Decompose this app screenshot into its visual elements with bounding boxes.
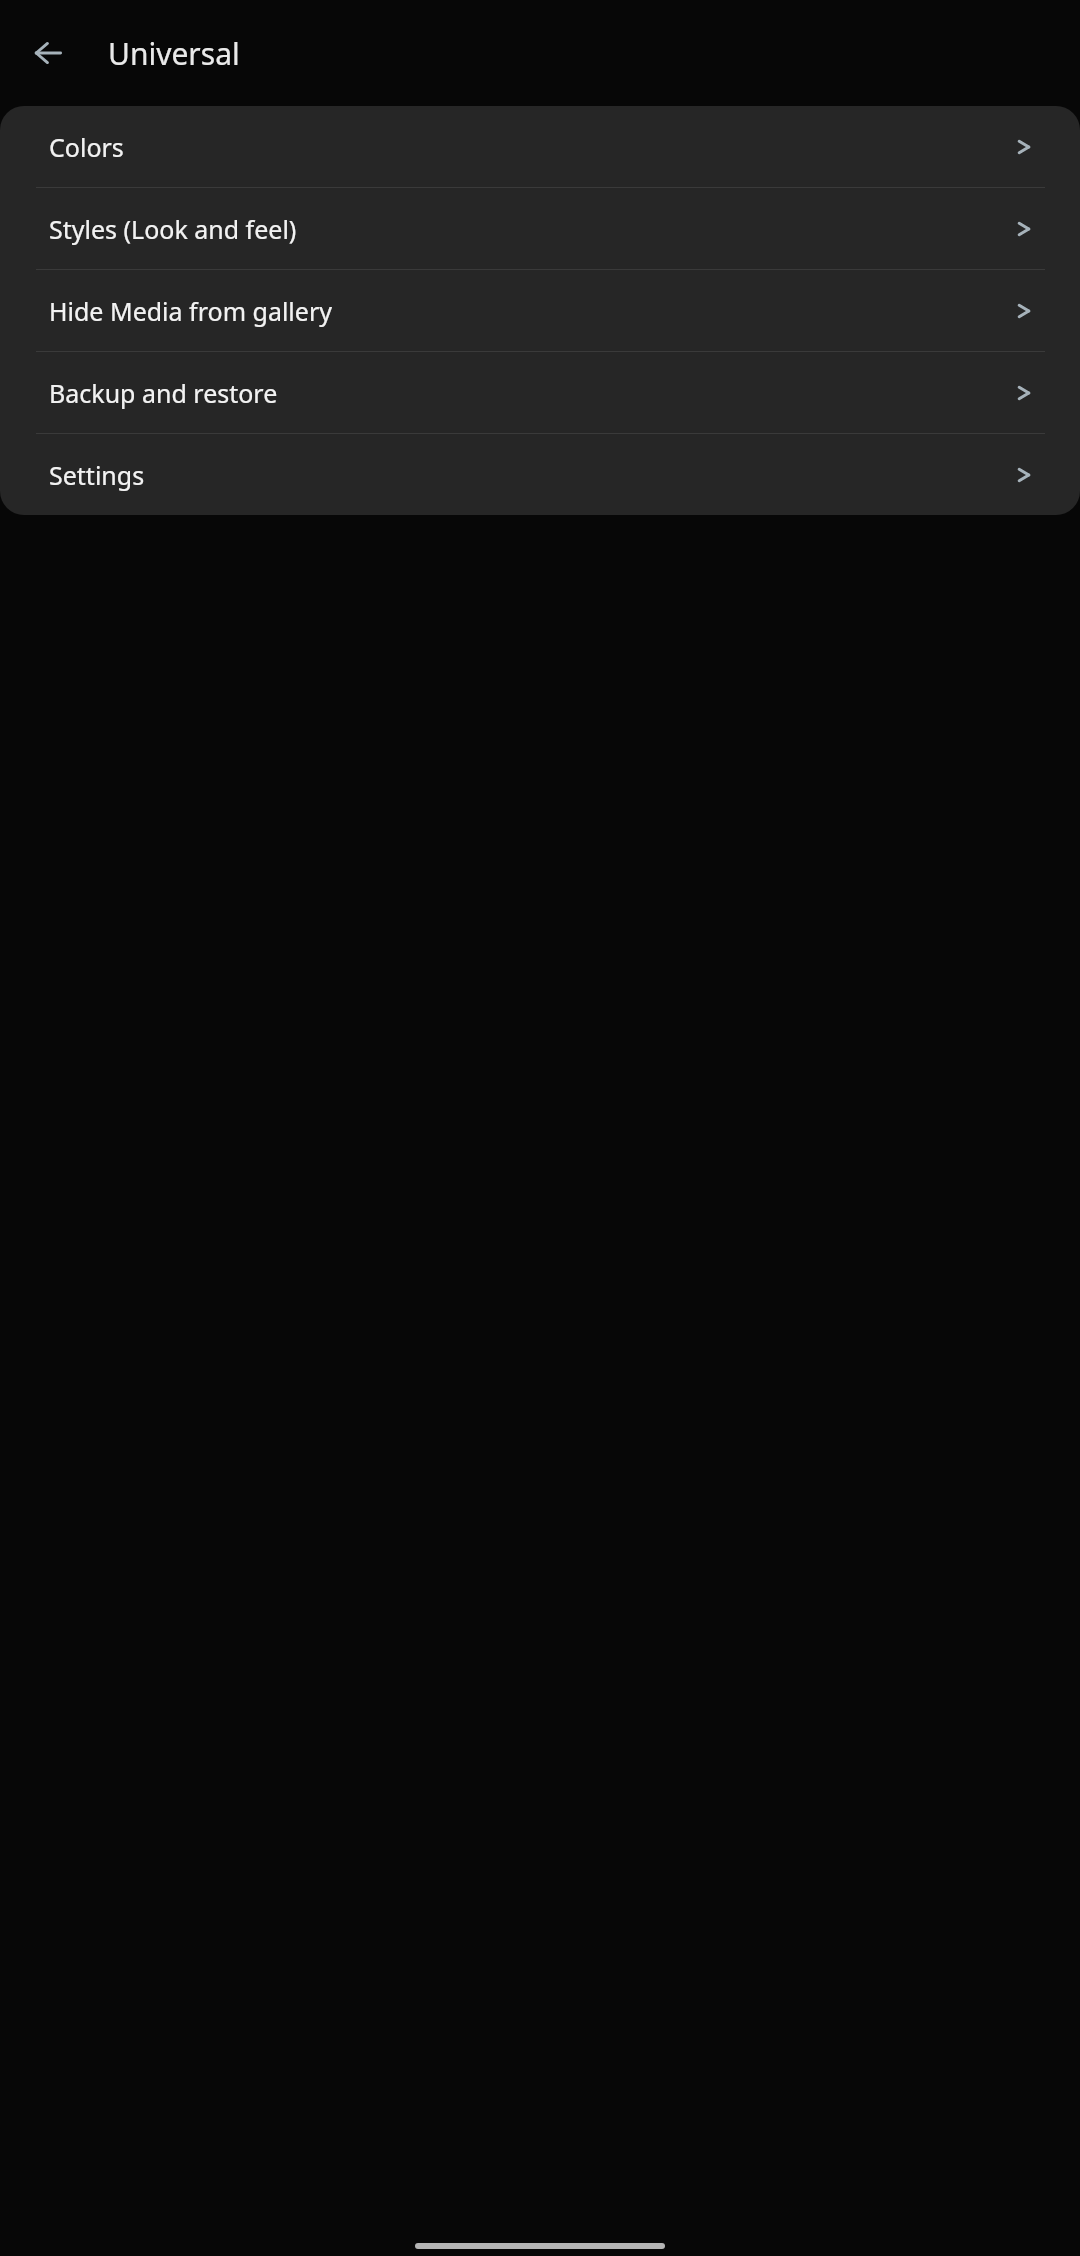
staticText: Hide Media from gallery — [49, 294, 332, 328]
staticText: Backup and restore — [49, 376, 278, 410]
other: Styles (Look and feel) — [1012, 217, 1036, 241]
staticText: Settings — [49, 458, 145, 492]
button[interactable]: Backup and restore — [0, 352, 1080, 433]
button[interactable]: Colors — [0, 106, 1080, 187]
button[interactable]: Hide Media from gallery — [0, 270, 1080, 351]
button[interactable]: Styles (Look and feel) — [0, 188, 1080, 269]
other: Backup and restore — [1012, 381, 1036, 405]
staticText: Colors — [49, 130, 124, 164]
other: Hide Media from gallery — [1012, 299, 1036, 323]
button[interactable]: Back — [22, 27, 74, 79]
button[interactable]: Settings — [0, 434, 1080, 515]
staticText: Universal — [108, 33, 240, 74]
staticText: Styles (Look and feel) — [49, 212, 297, 246]
other: Settings — [1012, 463, 1036, 487]
other: Colors — [1012, 135, 1036, 159]
